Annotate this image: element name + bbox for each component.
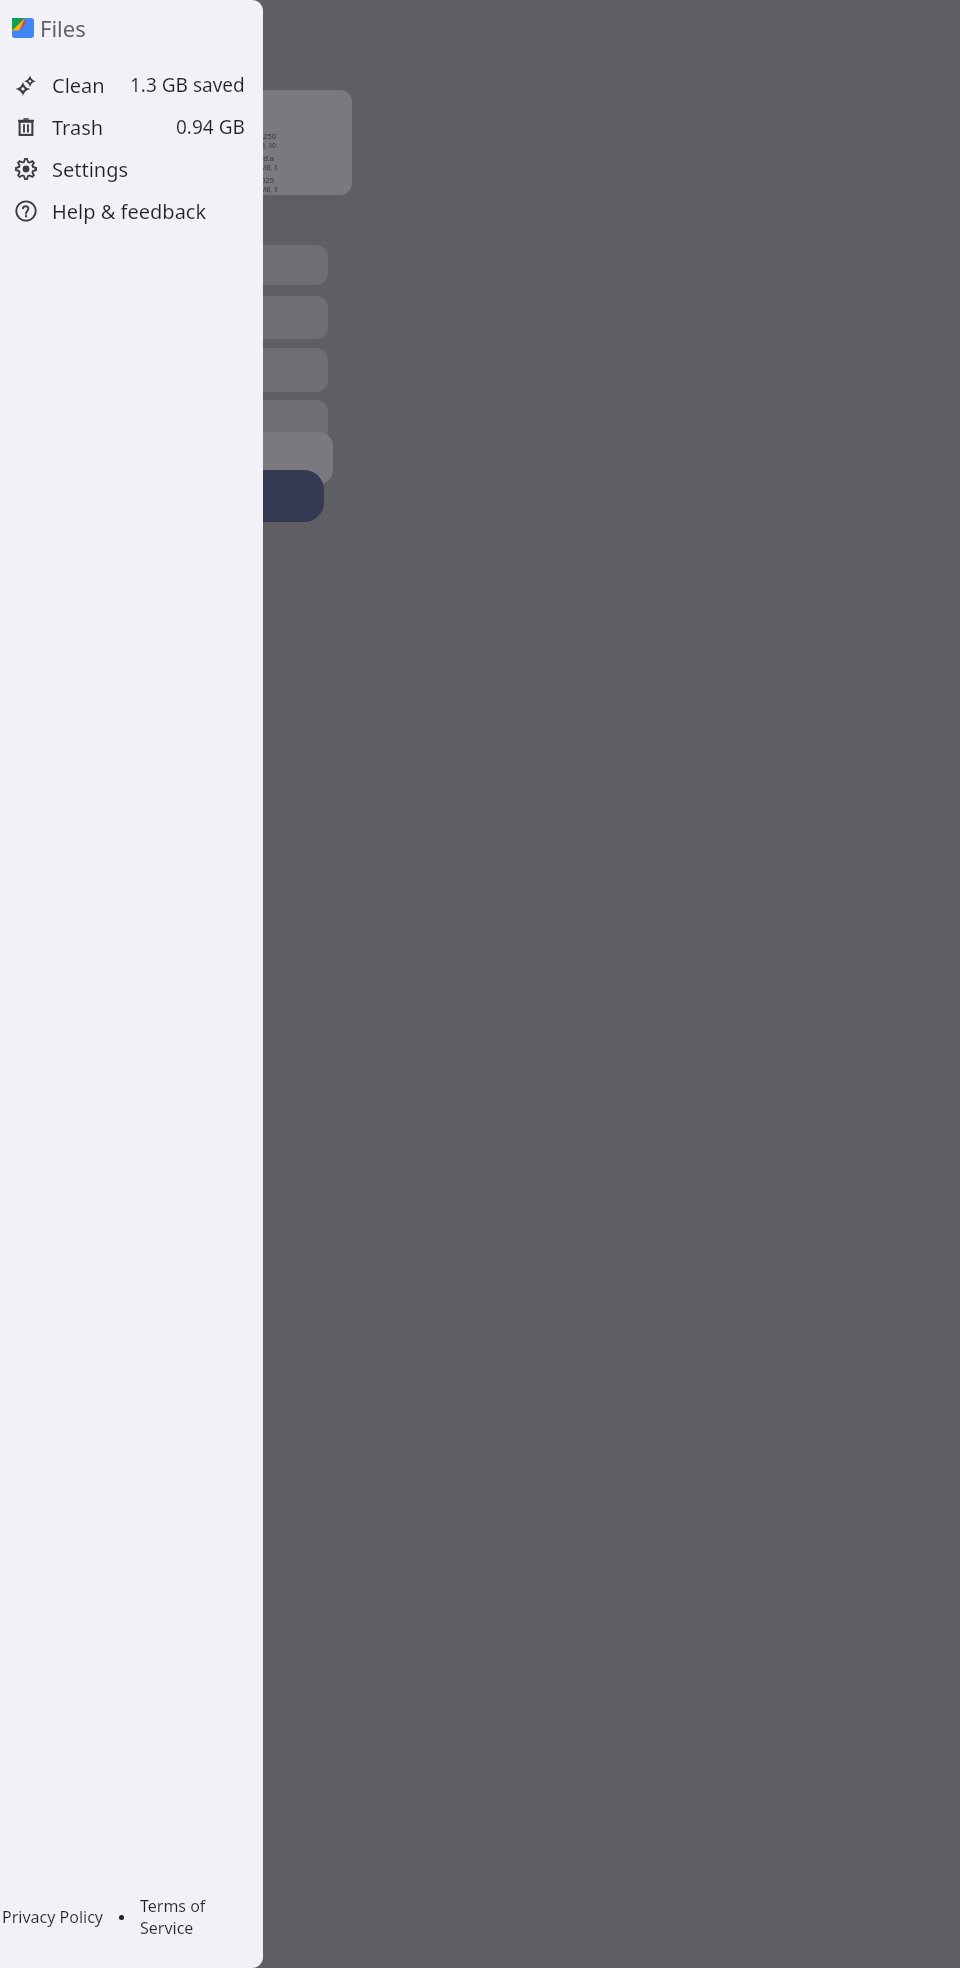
staticText: Trash xyxy=(52,114,104,141)
staticText: 163 MB, 30 xyxy=(242,141,276,150)
staticText: 30 days left xyxy=(219,114,262,125)
button[interactable]: Trash xyxy=(0,106,263,148)
button[interactable]: Settings xyxy=(0,148,263,190)
button[interactable] xyxy=(208,348,328,392)
staticText: 1.3 GB saved xyxy=(130,72,245,98)
staticText: 0.94 GB xyxy=(176,114,245,140)
staticText: Help & feedback xyxy=(52,198,207,225)
staticText: Files xyxy=(40,13,86,43)
button[interactable] xyxy=(208,296,328,339)
staticText: Settings xyxy=(52,156,129,183)
button[interactable]: Terms of Service xyxy=(138,1891,263,1943)
staticText: 21.09 MB, 3 xyxy=(242,185,278,194)
button[interactable] xyxy=(208,245,328,285)
button[interactable]: Help & feedback xyxy=(0,190,263,232)
button[interactable]: Privacy Policy xyxy=(0,1902,105,1932)
staticText: F-Droid.a xyxy=(242,153,275,163)
staticText: 11.90 MB, 3 xyxy=(242,163,278,172)
button[interactable]: can xyxy=(200,470,324,522)
staticText: VID20250 xyxy=(242,131,276,141)
button[interactable]: lder xyxy=(205,432,333,484)
staticText: VID-2025 xyxy=(242,175,275,185)
button[interactable]: Clean xyxy=(0,64,263,106)
staticText: Clean xyxy=(52,72,105,99)
button[interactable] xyxy=(208,400,328,440)
